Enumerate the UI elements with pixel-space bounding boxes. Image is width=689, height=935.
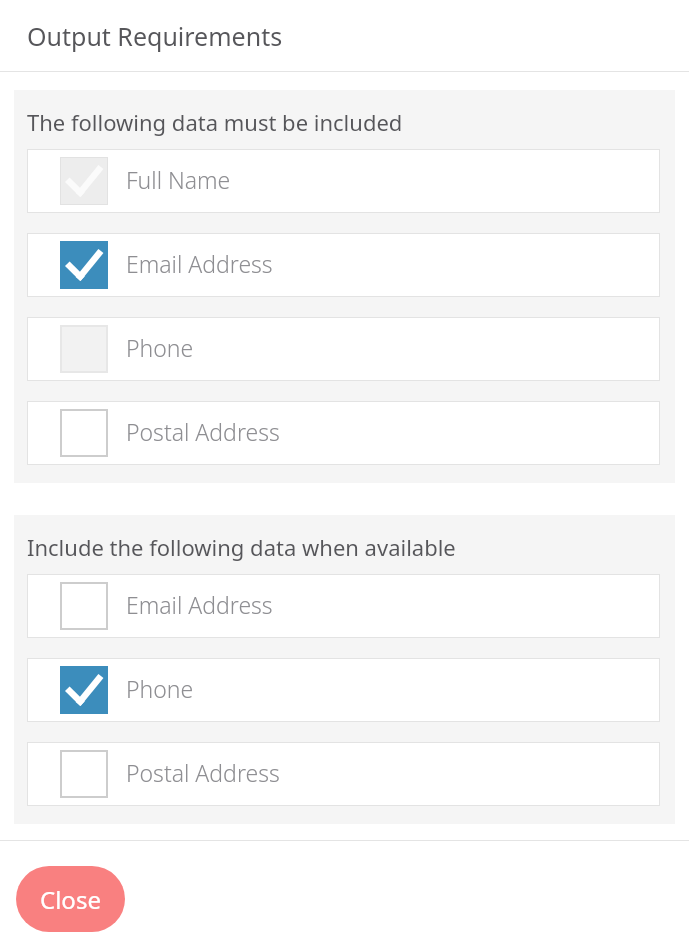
staticText: The following data must be included — [27, 107, 403, 137]
staticText: Email Address — [126, 589, 273, 620]
button[interactable]: Email Address — [27, 574, 660, 638]
staticText: Phone — [126, 673, 194, 704]
staticText: Postal Address — [126, 416, 280, 447]
button[interactable]: Postal Address — [27, 401, 660, 465]
staticText: Output Requirements — [27, 19, 283, 53]
button[interactable]: Full Name — [27, 149, 660, 213]
staticText: Email Address — [126, 248, 273, 279]
staticText: Include the following data when availabl… — [27, 532, 456, 562]
button[interactable]: Postal Address — [27, 742, 660, 806]
staticText: Postal Address — [126, 757, 280, 788]
button[interactable]: Close — [16, 866, 125, 932]
button[interactable]: Phone — [27, 317, 660, 381]
staticText: Full Name — [126, 164, 231, 195]
button[interactable]: Email Address — [27, 233, 660, 297]
button[interactable]: Phone — [27, 658, 660, 722]
staticText: Close — [40, 883, 101, 916]
staticText: Phone — [126, 332, 194, 363]
